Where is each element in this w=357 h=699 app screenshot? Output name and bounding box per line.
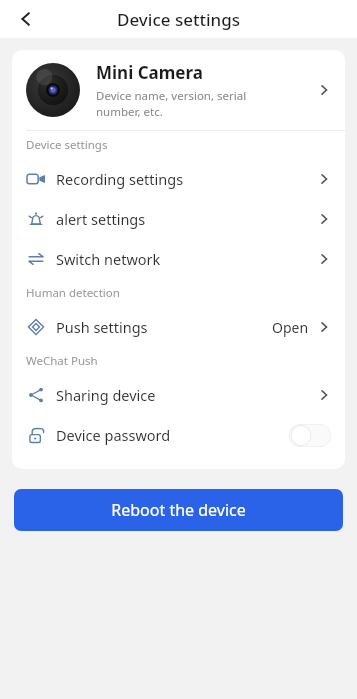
- staticText: Reboot the device: [111, 499, 246, 521]
- button[interactable]: Device password: [12, 415, 345, 455]
- staticText: Recording settings: [56, 169, 317, 189]
- staticText: Push settings: [56, 317, 272, 337]
- button[interactable]: Push settings: [12, 307, 345, 347]
- staticText: Switch network: [56, 249, 317, 269]
- staticText: Device settings: [117, 8, 241, 31]
- staticText: Device password: [56, 425, 289, 445]
- staticText: WeChat Push: [26, 353, 98, 369]
- staticText: Sharing device: [56, 385, 317, 405]
- staticText: alert settings: [56, 209, 317, 229]
- staticText: Human detection: [26, 285, 120, 301]
- button[interactable]: Back: [6, 0, 46, 38]
- staticText: Device name, version, serial number, etc…: [96, 88, 247, 119]
- button[interactable]: Device password toggle: [289, 424, 331, 447]
- button[interactable]: Reboot the device: [14, 489, 343, 531]
- staticText: Open: [272, 318, 309, 337]
- staticText: Mini Camera: [96, 61, 203, 84]
- button[interactable]: alert settings: [12, 199, 345, 239]
- staticText: Device settings: [26, 137, 108, 153]
- button[interactable]: Recording settings: [12, 159, 345, 199]
- button[interactable]: Sharing device: [12, 375, 345, 415]
- button[interactable]: Switch network: [12, 239, 345, 279]
- button[interactable]: Mini Camera: [12, 50, 345, 130]
